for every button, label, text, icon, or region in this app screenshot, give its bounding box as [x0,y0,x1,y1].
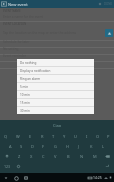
button[interactable]: A [5,141,16,151]
staticText: X [30,154,33,159]
staticText: Ciao [53,123,62,128]
button[interactable]: Z [13,151,25,161]
staticText: V [54,154,57,159]
button[interactable]: Home [12,174,20,182]
staticText: M [93,154,97,159]
button[interactable]: U [70,131,81,141]
button[interactable]: G [49,141,61,151]
button[interactable]: O [92,131,103,141]
button[interactable]: J [73,141,85,151]
button[interactable]: Display a notification [17,67,94,74]
staticText: Do nothing [20,61,37,65]
staticText: New event [8,2,28,7]
button[interactable]: X [25,151,37,161]
button[interactable]: F [38,141,49,151]
button[interactable]: Enter [100,161,114,171]
button[interactable]: DONE [104,0,113,8]
button[interactable]: N [75,151,88,161]
staticText: DONE [104,2,113,6]
button[interactable]: 30 min [17,107,94,114]
staticText: Z [18,154,21,159]
button[interactable]: 15 min [17,99,94,106]
button[interactable]: M [88,151,101,161]
button[interactable]: Add guest [96,0,104,8]
button[interactable]: 123 [0,161,14,171]
button[interactable]: Hide keyboard [2,174,10,182]
staticText: P [107,134,110,139]
button[interactable]: P [103,131,114,141]
button[interactable]: C [37,151,49,161]
staticText: D [31,144,34,149]
button[interactable]: Navigate up [0,0,8,8]
staticText: No setting [3,47,19,51]
staticText: 14:25 [93,175,102,180]
staticText: Display a notification [20,69,51,73]
button[interactable]: D [27,141,38,151]
button[interactable]: Pick on map [105,29,113,37]
staticText: O [96,134,100,139]
staticText: C [42,154,45,159]
staticText: 15 min [20,101,30,105]
staticText: I [86,134,88,139]
button[interactable]: Shift [0,151,13,161]
staticText: N [80,154,84,159]
staticText: Q [4,134,8,139]
staticText: U [74,134,77,139]
staticText: Y [63,134,66,139]
staticText: H [66,144,69,149]
staticText: G [54,144,57,149]
button[interactable]: W [12,131,24,141]
staticText: W [16,134,20,139]
staticText: EVENT NAME [3,9,21,13]
button[interactable]: Backspace [101,151,114,161]
staticText: Event reminder [3,54,27,58]
staticText: E [29,134,32,139]
button[interactable]: Y [59,131,70,141]
button[interactable]: Ring an alarm [17,75,94,82]
button[interactable]: V [49,151,62,161]
button[interactable]: Emoji [14,161,22,171]
button[interactable]: K [85,141,97,151]
button[interactable]: Recents [22,174,30,182]
button[interactable]: E [24,131,36,141]
staticText: 5 min [20,85,29,89]
staticText: S [20,144,23,149]
button[interactable]: L [97,141,109,151]
staticText: L [102,144,105,149]
button[interactable]: 5 min [17,83,94,90]
button[interactable]: H [61,141,73,151]
staticText: K [90,144,93,149]
staticText: 30 min [20,109,30,113]
button[interactable]: 10 min [17,91,94,98]
button[interactable]: I [81,131,92,141]
button[interactable]: T [48,131,59,141]
staticText: EVENT LOCATION [3,22,27,26]
staticText: Ring an alarm [20,77,41,81]
button[interactable]: R [36,131,48,141]
staticText: 10 min [20,93,30,97]
staticText: B [67,154,70,159]
staticText: R [41,134,44,139]
button[interactable]: Q [0,131,12,141]
staticText: J [78,144,80,149]
staticText: F [42,144,45,149]
button[interactable]: Change keyboard [87,175,93,181]
staticText: Schedule for later [3,40,30,44]
button[interactable]: S [16,141,27,151]
button[interactable]: Do nothing [17,59,94,66]
staticText: A [9,144,12,149]
staticText: 123 [4,164,11,169]
button[interactable]: B [62,151,75,161]
staticText: T [52,134,55,139]
